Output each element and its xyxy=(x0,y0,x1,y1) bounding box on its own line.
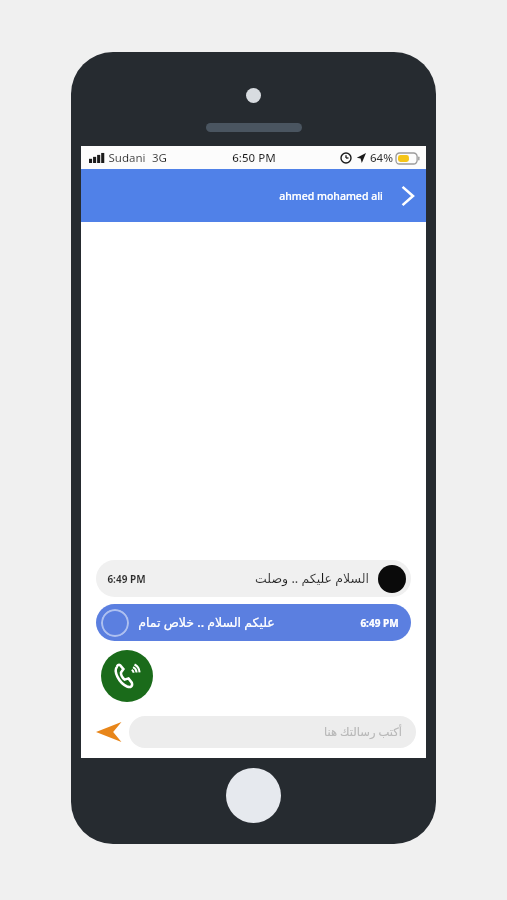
staticText: أكتب رسالتك هنا xyxy=(324,724,402,740)
button[interactable]: ahmed mohamed ali xyxy=(81,169,426,222)
button[interactable]: عليكم السلام .. خلاص تمام xyxy=(96,604,411,641)
other: Open contact details xyxy=(401,184,414,208)
staticText: 6:49 PM xyxy=(107,572,146,586)
staticText: السلام عليكم .. وصلت xyxy=(255,570,369,587)
staticText: ahmed mohamed ali xyxy=(279,189,383,203)
staticText: 64% xyxy=(370,150,393,166)
button[interactable]: Send xyxy=(91,716,127,748)
button[interactable]: أكتب رسالتك هنا xyxy=(129,716,416,748)
staticText: Sudani xyxy=(108,150,146,166)
staticText: 3G xyxy=(152,150,167,166)
staticText: 6:50 PM xyxy=(232,150,276,166)
staticText: عليكم السلام .. خلاص تمام xyxy=(138,614,275,631)
button[interactable]: 6:49 PM xyxy=(96,560,411,597)
staticText: 6:49 PM xyxy=(360,616,399,630)
button[interactable]: Call xyxy=(101,650,153,702)
